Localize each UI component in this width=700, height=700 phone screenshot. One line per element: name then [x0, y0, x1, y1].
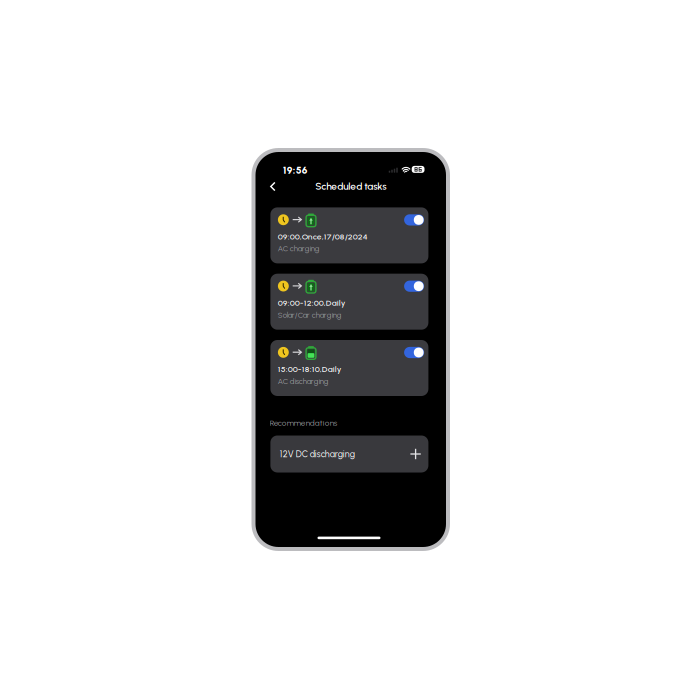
staticText: AC charging	[278, 244, 320, 253]
staticText: AC discharging	[278, 377, 329, 386]
staticText: 15:00-18:10,Daily	[278, 364, 342, 374]
staticText: Scheduled tasks	[315, 180, 386, 192]
button[interactable]: 09:00-12:00,Daily	[270, 274, 428, 330]
button[interactable]: 09:00,Once,17/08/2024	[270, 207, 428, 263]
staticText: 09:00-12:00,Daily	[278, 298, 346, 308]
staticText: 09:00,Once,17/08/2024	[278, 231, 368, 242]
staticText: 19:56	[283, 164, 308, 176]
staticText: 12V DC discharging	[280, 449, 355, 459]
button[interactable]: 12V DC discharging	[270, 435, 428, 472]
staticText: Solar/Car charging	[278, 310, 342, 320]
button[interactable]: 15:00-18:10,Daily	[270, 340, 428, 396]
button[interactable]: Back	[261, 175, 285, 197]
staticText: Recommendations	[270, 418, 337, 428]
